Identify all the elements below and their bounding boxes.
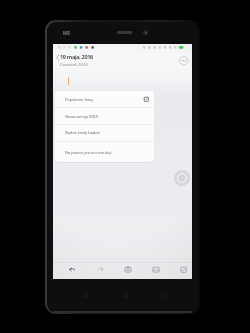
staticText: MI bbox=[63, 29, 71, 36]
button[interactable]: Nowa wersja MIUI bbox=[55, 108, 154, 124]
staticText: Nowa wersja MIUI bbox=[65, 114, 98, 119]
button[interactable]: Popularne frazy bbox=[55, 91, 154, 107]
button[interactable]: Na pewno jest w instrukcji bbox=[55, 142, 154, 162]
staticText: 19 maja, 2016 bbox=[60, 53, 93, 61]
button[interactable] bbox=[55, 54, 61, 62]
button[interactable]: Będzie kiedy będzie bbox=[55, 124, 154, 141]
staticText: Popularne frazy bbox=[65, 97, 94, 102]
button[interactable] bbox=[53, 263, 192, 279]
staticText: Na pewno jest w instrukcji bbox=[65, 150, 112, 155]
staticText: Będzie kiedy będzie bbox=[65, 130, 100, 135]
button[interactable] bbox=[144, 97, 149, 102]
button[interactable] bbox=[174, 170, 190, 186]
button[interactable] bbox=[179, 56, 189, 66]
staticText: Czwartek 20:43 bbox=[60, 61, 88, 67]
